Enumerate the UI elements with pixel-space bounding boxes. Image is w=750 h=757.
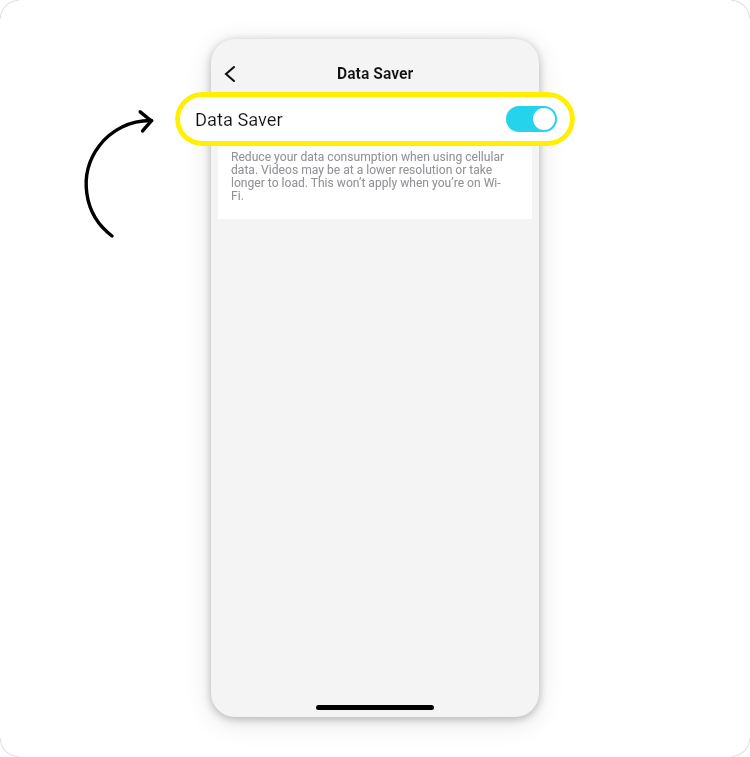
- button[interactable]: Data Saver: [175, 92, 575, 146]
- button[interactable]: Data Saver toggle: [468, 107, 519, 133]
- staticText: Data Saver: [230, 109, 318, 130]
- staticText: Reduce your data consumption when using …: [231, 150, 509, 203]
- staticText: Data Saver: [195, 109, 283, 130]
- button[interactable]: Data Saver toggle: [506, 106, 557, 132]
- staticText: Data Saver: [337, 64, 414, 82]
- button[interactable]: Data Saver: [218, 93, 532, 146]
- button[interactable]: Back: [212, 56, 248, 92]
